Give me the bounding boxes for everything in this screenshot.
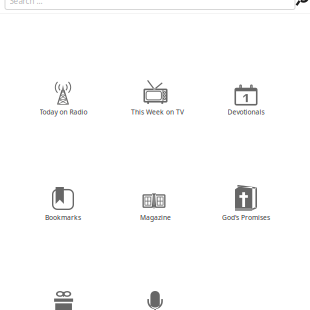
button[interactable]: This Week on TV <box>109 75 201 127</box>
button[interactable]: Giving <box>17 286 109 310</box>
button[interactable]: Magazine <box>109 181 201 233</box>
staticText: God's Promises <box>222 213 270 222</box>
staticText: Today on Radio <box>39 108 87 116</box>
button[interactable]: Search field <box>5 0 295 9</box>
button[interactable]: Today on Radio <box>17 75 109 127</box>
button[interactable]: God's Promises <box>200 181 292 233</box>
staticText: Bookmarks <box>45 213 81 222</box>
button[interactable]: Search <box>295 0 308 5</box>
button[interactable]: Devotionals <box>200 75 292 127</box>
staticText: Magazine <box>140 213 171 222</box>
staticText: This Week on TV <box>131 108 184 116</box>
button[interactable]: Podcasts <box>109 286 201 310</box>
staticText: Devotionals <box>227 108 264 116</box>
button[interactable]: Bookmarks <box>17 181 109 233</box>
staticText: Search ... <box>9 0 42 6</box>
